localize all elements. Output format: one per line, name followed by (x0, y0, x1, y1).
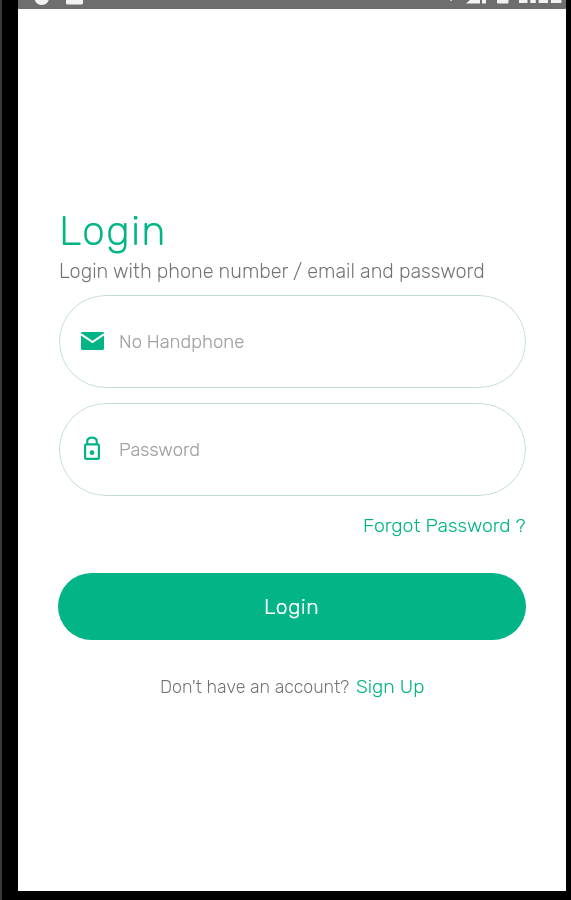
staticText: Password (119, 439, 200, 461)
staticText: Login (264, 594, 320, 619)
staticText: Don't have an account? (160, 676, 350, 697)
button[interactable]: Sign Up (356, 675, 425, 698)
button[interactable]: Login (58, 573, 526, 640)
button[interactable]: No Handphone (59, 295, 526, 388)
staticText: Login (59, 207, 167, 256)
staticText: No Handphone (119, 331, 245, 353)
staticText: Forgot Password ? (363, 514, 526, 537)
staticText: Sign Up (356, 675, 425, 698)
button[interactable]: Password (59, 403, 526, 496)
button[interactable]: Forgot Password ? (363, 514, 526, 537)
staticText: Login with phone number / email and pass… (59, 259, 485, 282)
